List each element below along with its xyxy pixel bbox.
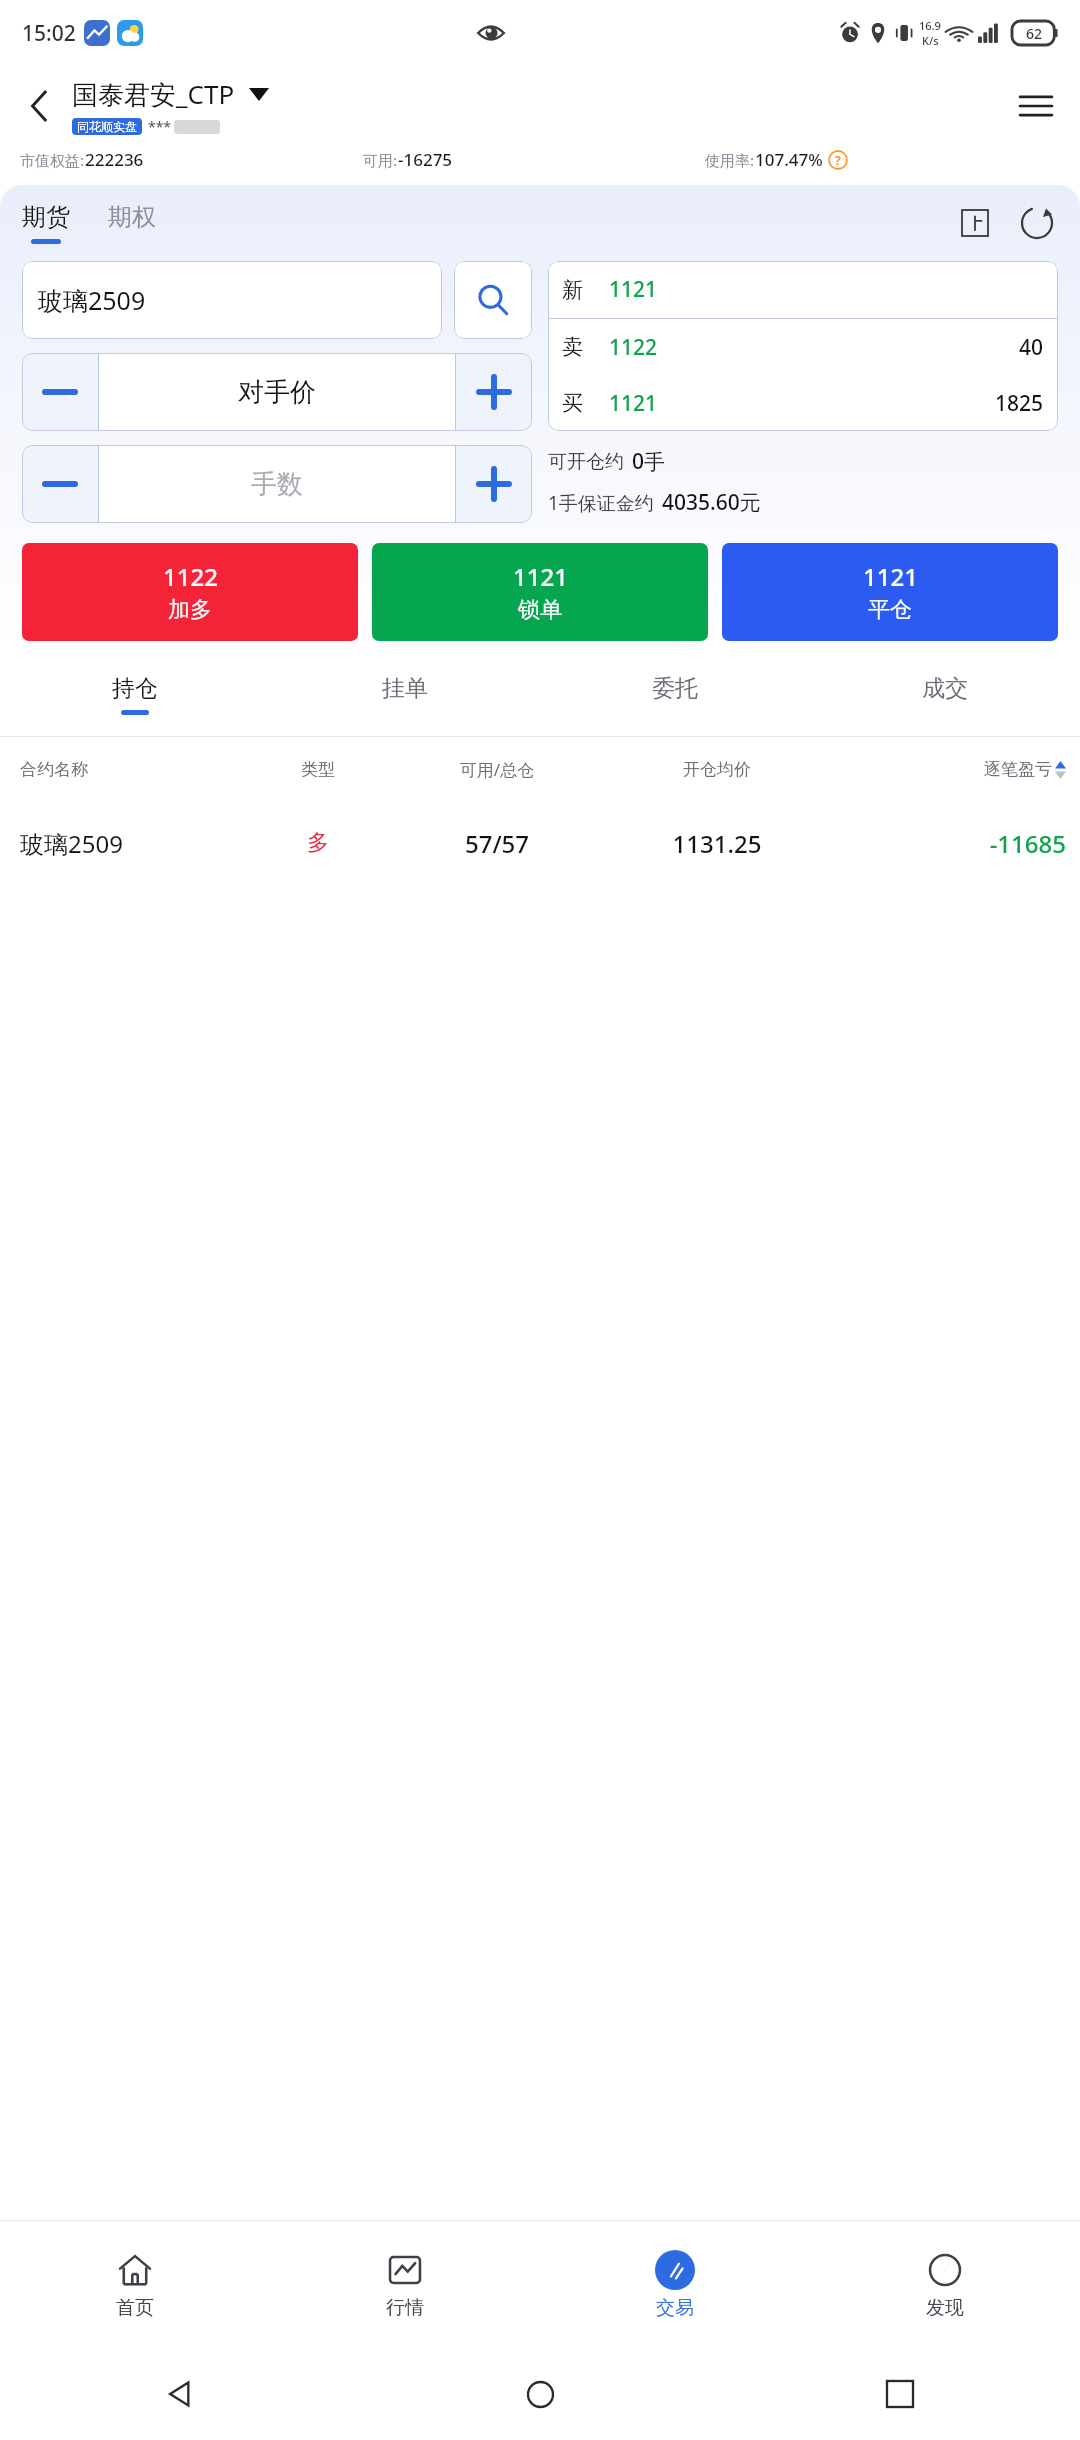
staticText: 对手价 xyxy=(238,376,316,409)
staticText: *** xyxy=(148,117,172,136)
staticText: 类型 xyxy=(249,759,387,780)
staticText: 1122 xyxy=(163,560,218,593)
staticText: 期货 xyxy=(22,202,70,232)
staticText: 玻璃2509 xyxy=(38,283,146,317)
button[interactable]: Help xyxy=(828,150,848,170)
staticText: 成交 xyxy=(922,674,968,703)
staticText: -16275 xyxy=(398,148,453,171)
button[interactable]: 成交 xyxy=(922,674,968,715)
staticText: 可用/总仓 xyxy=(387,758,607,781)
staticText: 首页 xyxy=(116,2296,154,2320)
button[interactable]: 挂单 xyxy=(382,674,428,715)
staticText: 发现 xyxy=(926,2296,964,2320)
staticText: 使用率: xyxy=(705,150,755,170)
staticText: 同花顺实盘 xyxy=(77,119,137,134)
staticText: 期权 xyxy=(108,202,156,232)
staticText: 16.9 xyxy=(919,18,941,33)
staticText: 逐笔盈亏 xyxy=(984,759,1052,780)
button[interactable]: 期货 xyxy=(22,202,70,244)
staticText: 玻璃2509 xyxy=(20,827,249,860)
staticText: 1131.25 xyxy=(607,827,827,860)
staticText: 国泰君安_CTP xyxy=(72,76,235,112)
button[interactable]: Settings xyxy=(958,206,992,240)
button[interactable]: Menu xyxy=(1008,78,1064,134)
staticText: K/s xyxy=(922,33,939,48)
button[interactable]: 1121 xyxy=(372,543,708,641)
button[interactable]: Decrease 对手价 xyxy=(22,353,98,431)
button[interactable]: 发现 xyxy=(885,2248,1005,2320)
button[interactable]: 委托 xyxy=(652,674,698,715)
staticText: 多 xyxy=(249,829,387,857)
button[interactable]: 玻璃2509 xyxy=(22,261,442,339)
button[interactable]: 国泰君安_CTP xyxy=(72,76,269,112)
button[interactable]: Back xyxy=(150,2364,210,2424)
staticText: 222236 xyxy=(85,148,144,171)
button[interactable]: 首页 xyxy=(75,2248,195,2320)
button[interactable]: Home xyxy=(510,2364,570,2424)
staticText: 1121 xyxy=(609,389,658,418)
staticText: -11685 xyxy=(827,827,1066,860)
staticText: 开仓均价 xyxy=(607,759,827,780)
staticText: 1121 xyxy=(609,275,658,304)
button[interactable]: Increase 手数 xyxy=(456,445,532,523)
staticText: 40 xyxy=(1019,333,1044,362)
staticText: 挂单 xyxy=(382,674,428,703)
staticText: 买 xyxy=(562,390,583,416)
staticText: 1122 xyxy=(609,333,658,362)
button[interactable]: 买 xyxy=(562,375,1044,431)
staticText: 平仓 xyxy=(868,596,912,624)
staticText: 1121 xyxy=(513,560,568,593)
staticText: 4035.60元 xyxy=(662,488,761,517)
button[interactable]: 持仓 xyxy=(112,674,158,715)
staticText: 可开仓约 xyxy=(548,450,624,474)
button[interactable]: Increase 对手价 xyxy=(456,353,532,431)
button[interactable]: 期权 xyxy=(108,202,156,232)
staticText: 锁单 xyxy=(518,596,562,624)
button[interactable]: 卖 xyxy=(562,319,1044,375)
staticText: 加多 xyxy=(168,596,212,624)
button[interactable]: Recents xyxy=(870,2364,930,2424)
button[interactable]: Refresh xyxy=(1018,204,1056,242)
button[interactable]: 手数 xyxy=(99,445,455,523)
staticText: 新 xyxy=(562,277,583,303)
button[interactable]: 1121 xyxy=(722,543,1058,641)
staticText: 1手保证金约 xyxy=(548,490,654,516)
button[interactable]: 对手价 xyxy=(99,353,455,431)
button[interactable]: 新 xyxy=(562,261,1044,318)
staticText: 15:02 xyxy=(22,19,76,48)
button[interactable]: 玻璃2509 xyxy=(0,801,1080,885)
button[interactable]: 交易 xyxy=(615,2248,735,2320)
staticText: 57/57 xyxy=(387,827,607,860)
staticText: 卖 xyxy=(562,334,583,360)
staticText: 1825 xyxy=(995,389,1044,418)
staticText: 行情 xyxy=(386,2296,424,2320)
button[interactable]: Decrease 手数 xyxy=(22,445,98,523)
staticText: 合约名称 xyxy=(20,759,249,780)
staticText: 持仓 xyxy=(112,674,158,703)
staticText: 手数 xyxy=(251,468,303,501)
staticText: 1121 xyxy=(863,560,918,593)
button[interactable]: 行情 xyxy=(345,2248,465,2320)
staticText: 市值权益: xyxy=(20,150,85,170)
staticText: 62 xyxy=(1026,24,1043,43)
button[interactable]: Search xyxy=(454,261,532,339)
staticText: 0手 xyxy=(632,447,666,476)
staticText: 107.47% xyxy=(755,148,823,171)
staticText: 交易 xyxy=(656,2296,694,2320)
staticText: 委托 xyxy=(652,674,698,703)
button[interactable]: Back xyxy=(12,78,68,134)
staticText: ? xyxy=(835,152,841,168)
button[interactable]: 1122 xyxy=(22,543,358,641)
staticText: 可用: xyxy=(363,150,398,170)
